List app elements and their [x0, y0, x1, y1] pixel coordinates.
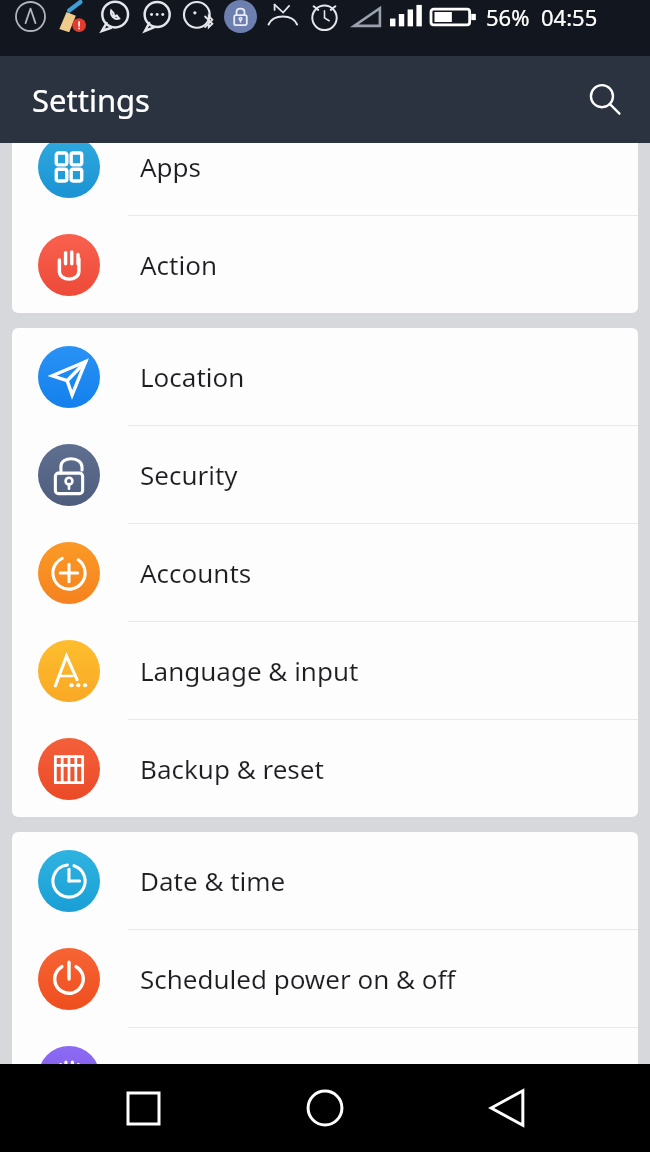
button[interactable]: Search [576, 71, 634, 129]
staticText: Settings [32, 79, 150, 121]
button[interactable]: Location [12, 328, 638, 425]
button[interactable]: Backup & reset [12, 720, 638, 817]
button[interactable]: Home [286, 1069, 364, 1147]
button[interactable]: Apps [12, 118, 638, 215]
button[interactable]: Security [12, 426, 638, 523]
button[interactable]: Recents [104, 1069, 182, 1147]
button[interactable]: Action [12, 216, 638, 313]
staticText: Accounts [140, 555, 252, 590]
button[interactable]: Back [468, 1069, 546, 1147]
button[interactable]: Scheduled power on & off [12, 930, 638, 1027]
staticText: Date & time [140, 863, 286, 898]
staticText: Language & input [140, 653, 359, 688]
staticText: Apps [140, 149, 202, 184]
button[interactable]: Date & time [12, 832, 638, 929]
staticText: 04:55 [541, 2, 598, 32]
staticText: Accessibility [140, 1059, 287, 1094]
staticText: Scheduled power on & off [140, 961, 456, 996]
staticText: Location [140, 359, 245, 394]
staticText: Backup & reset [140, 751, 324, 786]
button[interactable]: Accounts [12, 524, 638, 621]
button[interactable]: Accessibility [12, 1028, 638, 1125]
button[interactable]: Language & input [12, 622, 638, 719]
staticText: Action [140, 247, 217, 282]
staticText: 56% [486, 2, 530, 32]
staticText: Security [140, 457, 238, 492]
